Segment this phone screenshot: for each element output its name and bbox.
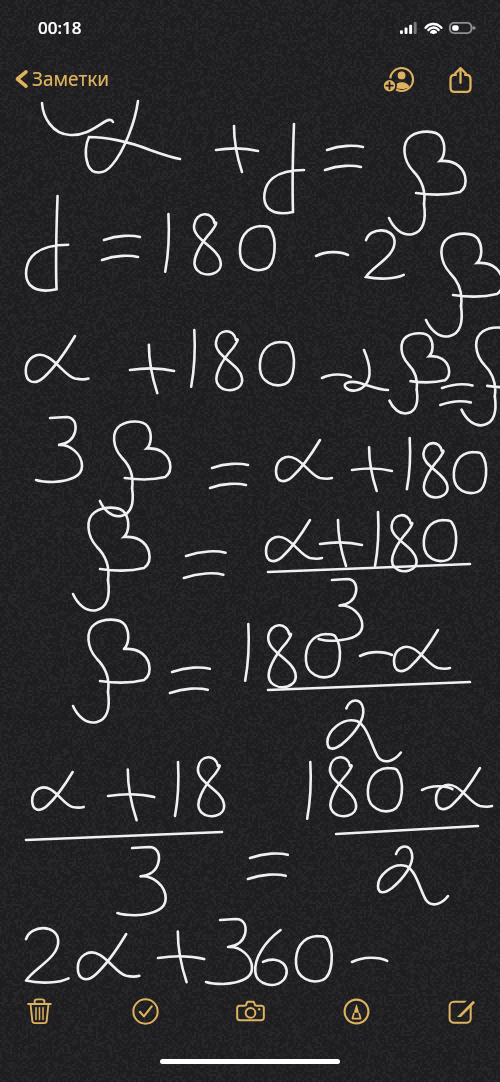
button[interactable]: Compose xyxy=(438,988,484,1034)
button[interactable]: Checklist xyxy=(122,988,168,1034)
button[interactable]: Add people xyxy=(378,59,418,99)
button[interactable]: Camera xyxy=(227,988,273,1034)
button[interactable]: Заметки xyxy=(12,66,110,92)
button[interactable]: Markup xyxy=(333,988,379,1034)
staticText: Заметки xyxy=(32,66,110,92)
button[interactable]: Delete xyxy=(16,988,62,1034)
button[interactable]: Share xyxy=(440,59,480,99)
staticText: 00:18 xyxy=(38,16,82,39)
